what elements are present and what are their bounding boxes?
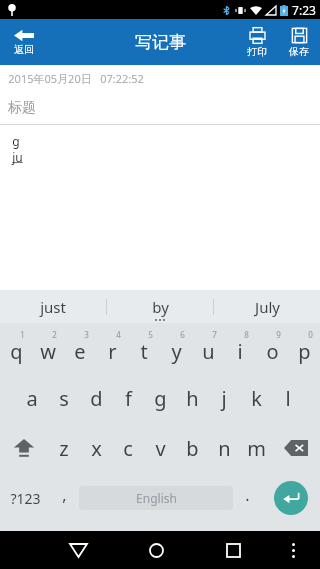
button[interactable]: Back <box>54 531 103 569</box>
staticText: a <box>26 385 38 412</box>
staticText: w <box>40 338 56 365</box>
staticText: July <box>255 297 280 317</box>
button[interactable]: b <box>176 423 208 473</box>
staticText: u <box>202 338 215 365</box>
staticText: 7:23 <box>292 2 316 18</box>
button[interactable]: m <box>240 423 272 473</box>
button[interactable]: Enter <box>274 481 308 515</box>
staticText: by <box>152 297 169 317</box>
button[interactable]: Recents <box>209 531 257 569</box>
button[interactable]: just <box>0 290 106 323</box>
staticText: q <box>10 338 23 365</box>
button[interactable]: a <box>16 373 48 423</box>
staticText: ju <box>12 149 23 165</box>
button[interactable]: ?123 <box>0 473 50 523</box>
staticText: 0 <box>308 329 313 340</box>
button[interactable]: 返回 <box>0 19 48 65</box>
staticText: 8 <box>244 329 249 340</box>
staticText: , <box>62 484 67 506</box>
button[interactable]: 0 <box>288 323 320 373</box>
staticText: o <box>266 338 279 365</box>
staticText: k <box>251 385 262 412</box>
button[interactable]: x <box>80 423 112 473</box>
staticText: 5 <box>148 329 153 340</box>
button[interactable]: c <box>112 423 144 473</box>
button[interactable]: Shift <box>0 423 48 473</box>
button[interactable]: k <box>240 373 272 423</box>
button[interactable]: j <box>208 373 240 423</box>
button[interactable]: July <box>214 290 320 323</box>
staticText: b <box>186 435 199 462</box>
button[interactable]: n <box>208 423 240 473</box>
button[interactable]: 2 <box>32 323 64 373</box>
staticText: y <box>171 338 182 365</box>
staticText: 9 <box>276 329 281 340</box>
staticText: j <box>221 385 227 412</box>
staticText: g <box>154 385 167 412</box>
staticText: ?123 <box>10 489 41 508</box>
button[interactable]: z <box>48 423 80 473</box>
staticText: 标题 <box>8 99 36 117</box>
staticText: 保存 <box>289 45 309 58</box>
staticText: f <box>125 385 132 412</box>
staticText: e <box>74 338 86 365</box>
staticText: 写记事 <box>135 32 186 53</box>
button[interactable]: 7 <box>192 323 224 373</box>
staticText: n <box>218 435 231 462</box>
staticText: 4 <box>116 329 121 340</box>
staticText: v <box>155 435 166 462</box>
button[interactable]: 9 <box>256 323 288 373</box>
button[interactable]: Backspace <box>272 423 320 473</box>
staticText: s <box>59 385 69 412</box>
staticText: 07:22:52 <box>100 71 144 86</box>
button[interactable]: s <box>48 373 80 423</box>
staticText: i <box>237 338 243 365</box>
staticText: p <box>298 338 311 365</box>
button[interactable]: Home <box>132 531 180 569</box>
staticText: 2015年05月20日 <box>8 71 92 86</box>
staticText: x <box>91 435 102 462</box>
button[interactable]: 6 <box>160 323 192 373</box>
button[interactable]: 打印 <box>236 19 278 65</box>
button[interactable]: Comma <box>50 473 79 523</box>
button[interactable]: 3 <box>64 323 96 373</box>
staticText: 2 <box>52 329 57 340</box>
staticText: r <box>108 338 117 365</box>
staticText: just <box>40 297 66 317</box>
button[interactable]: by <box>107 290 213 323</box>
button[interactable]: 5 <box>128 323 160 373</box>
staticText: 7 <box>212 329 217 340</box>
staticText: t <box>140 338 148 365</box>
button[interactable]: f <box>112 373 144 423</box>
staticText: d <box>90 385 103 412</box>
button[interactable]: h <box>176 373 208 423</box>
staticText: . <box>245 484 250 506</box>
button[interactable]: More options <box>274 531 313 569</box>
staticText: 打印 <box>247 45 267 58</box>
button[interactable]: l <box>272 373 304 423</box>
button[interactable]: 8 <box>224 323 256 373</box>
staticText: 3 <box>84 329 89 340</box>
button[interactable]: 4 <box>96 323 128 373</box>
staticText: h <box>186 385 199 412</box>
staticText: c <box>123 435 133 462</box>
staticText: English <box>136 490 177 506</box>
button[interactable]: Period <box>233 473 262 523</box>
staticText: 1 <box>20 329 25 340</box>
button[interactable]: g <box>144 373 176 423</box>
button[interactable]: 1 <box>0 323 32 373</box>
staticText: g <box>12 133 20 149</box>
staticText: 6 <box>180 329 185 340</box>
button[interactable]: v <box>144 423 176 473</box>
staticText: 返回 <box>14 43 34 56</box>
button[interactable]: 保存 <box>278 19 320 65</box>
staticText: m <box>247 435 266 462</box>
staticText: l <box>285 385 291 412</box>
staticText: z <box>59 435 69 462</box>
button[interactable]: English <box>79 486 233 510</box>
button[interactable]: d <box>80 373 112 423</box>
